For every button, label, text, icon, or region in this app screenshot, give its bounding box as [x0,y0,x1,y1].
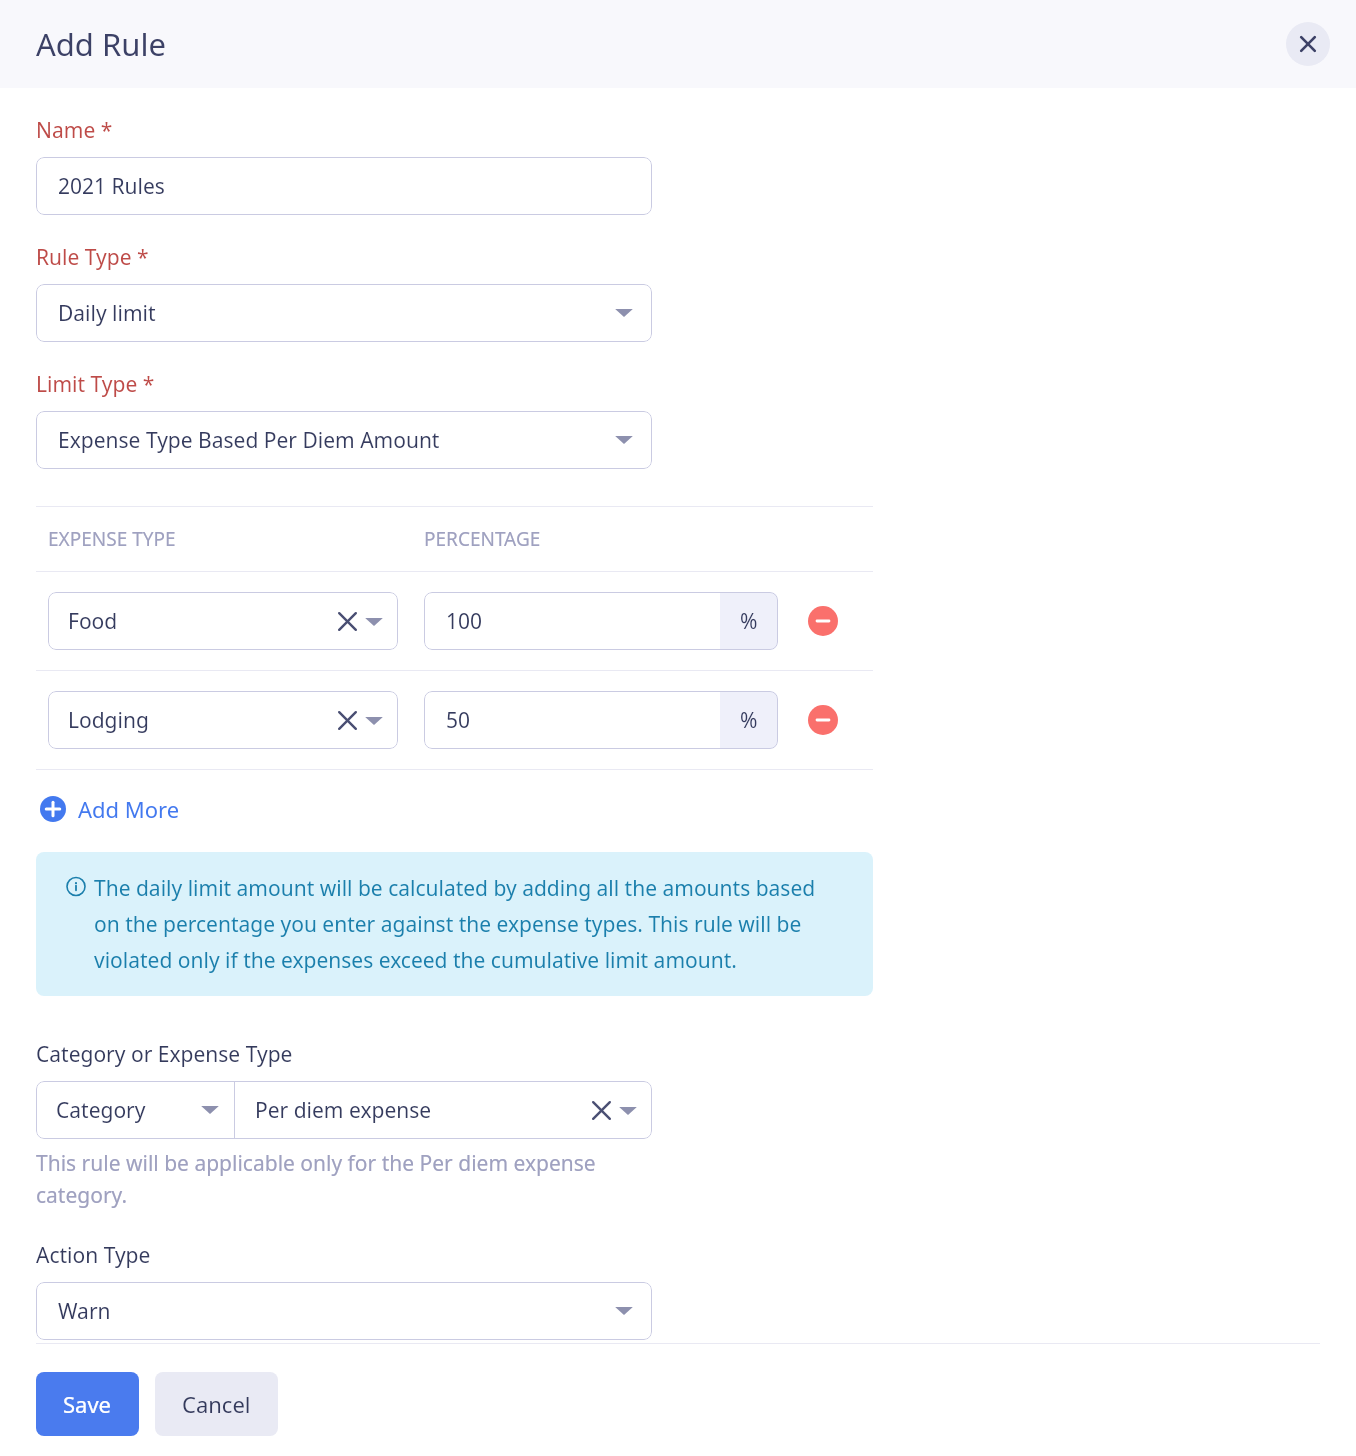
staticText: Daily limit [58,299,156,328]
button[interactable]: Save [36,1372,139,1436]
button[interactable]: 2021 Rules [36,157,652,215]
staticText: Food [68,607,118,636]
staticText: EXPENSE TYPE [48,526,424,552]
button[interactable]: Daily limit [36,284,652,342]
button[interactable]: Add More [36,790,184,828]
staticText: This rule will be applicable only for th… [36,1149,596,1209]
staticText: Name * [36,116,113,145]
button[interactable]: Expense Type Based Per Diem Amount [36,411,652,469]
button[interactable]: Food [48,592,398,650]
staticText: % [740,607,758,636]
staticText: Save [63,1389,112,1419]
button[interactable]: Close [1286,22,1330,66]
staticText: Limit Type * [36,370,155,399]
staticText: Per diem expense [255,1096,432,1125]
staticText: Warn [58,1297,111,1326]
button[interactable]: Lodging [48,691,398,749]
button[interactable]: 50 [424,691,778,749]
staticText: Category or Expense Type [36,1040,293,1069]
button[interactable]: Remove row [808,705,838,735]
staticText: 50 [446,706,471,735]
button[interactable]: 100 [424,592,778,650]
staticText: Rule Type * [36,243,149,272]
staticText: The daily limit amount will be calculate… [94,874,843,974]
button[interactable]: Category [36,1081,234,1139]
button[interactable]: Cancel [155,1372,278,1436]
button[interactable]: Remove row [808,606,838,636]
staticText: Lodging [68,706,149,735]
staticText: Add More [78,794,180,824]
staticText: Category [56,1096,146,1125]
staticText: Add Rule [36,23,166,65]
button[interactable]: Warn [36,1282,652,1340]
staticText: Cancel [182,1389,251,1419]
staticText: % [740,706,758,735]
staticText: 2021 Rules [58,172,165,201]
staticText: PERCENTAGE [424,526,541,552]
staticText: Expense Type Based Per Diem Amount [58,426,440,455]
button[interactable]: Per diem expense [235,1081,652,1139]
staticText: 100 [446,607,483,636]
staticText: Action Type [36,1241,151,1270]
